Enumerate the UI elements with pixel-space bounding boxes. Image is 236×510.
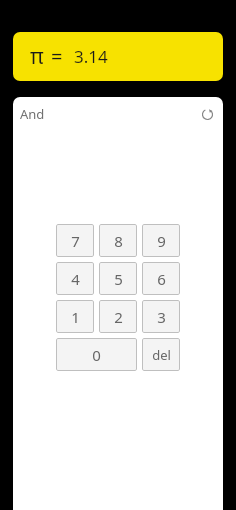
button[interactable]: 5 [99, 262, 137, 295]
button[interactable]: del [142, 338, 180, 371]
button[interactable]: π [13, 32, 223, 81]
staticText: 4 [71, 269, 80, 289]
button[interactable]: 8 [99, 224, 137, 257]
staticText: 1 [71, 307, 80, 327]
staticText: 5 [114, 269, 123, 289]
button[interactable]: 9 [142, 224, 180, 257]
staticText: del [152, 346, 171, 364]
staticText: 9 [157, 231, 166, 251]
button[interactable]: 6 [142, 262, 180, 295]
staticText: 6 [157, 269, 166, 289]
button[interactable]: Reset [197, 104, 217, 124]
button[interactable]: 3 [142, 300, 180, 333]
button[interactable]: 1 [56, 300, 94, 333]
button[interactable]: 0 [56, 338, 137, 371]
button[interactable]: 2 [99, 300, 137, 333]
staticText: 3 [157, 307, 166, 327]
button[interactable]: And [20, 105, 45, 123]
staticText: 0 [92, 345, 101, 365]
staticText: 7 [71, 231, 80, 251]
button[interactable]: 4 [56, 262, 94, 295]
staticText: = [51, 43, 63, 70]
staticText: 3.14 [74, 45, 108, 68]
staticText: 2 [114, 307, 123, 327]
button[interactable]: 7 [56, 224, 94, 257]
staticText: π [30, 42, 44, 71]
staticText: 8 [114, 231, 123, 251]
